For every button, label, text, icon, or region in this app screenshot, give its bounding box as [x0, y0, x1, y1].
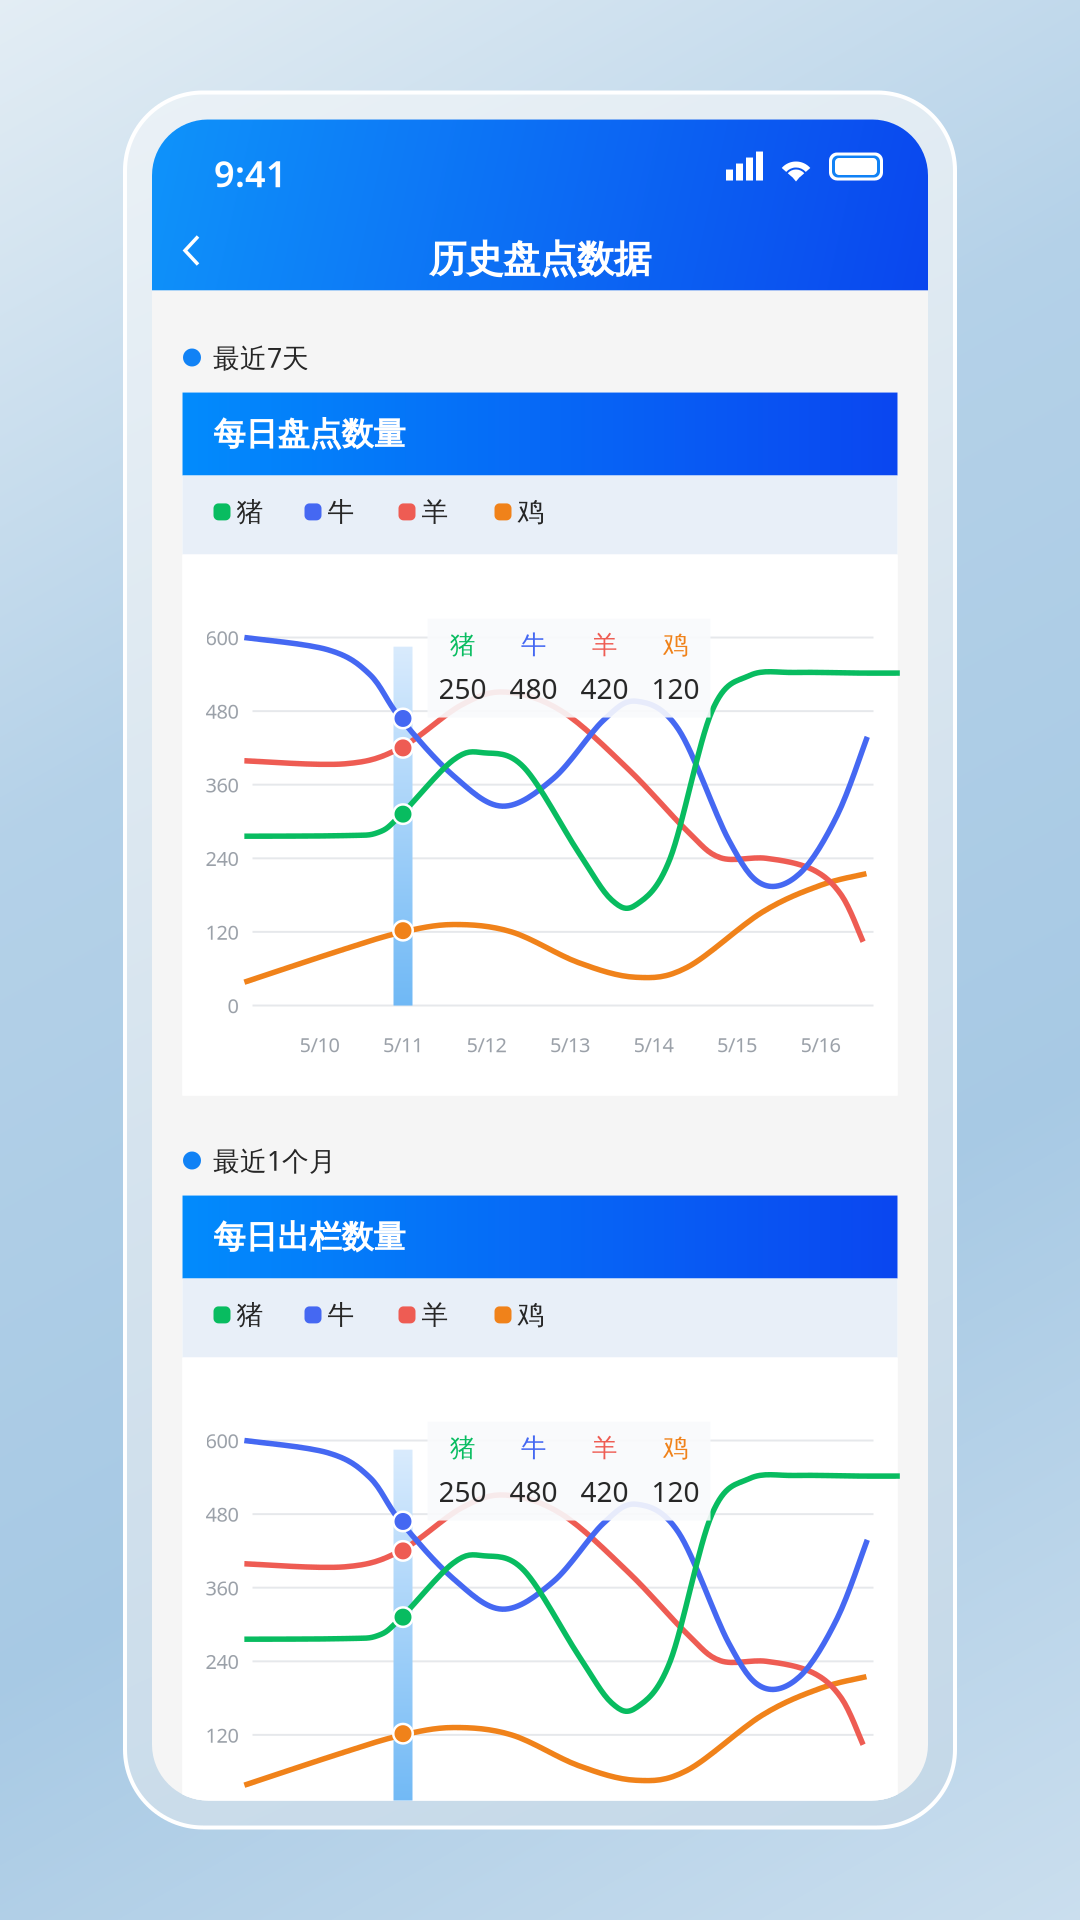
staticText: 羊: [592, 629, 617, 660]
staticText: 鸡: [517, 495, 544, 528]
staticText: 猪: [236, 495, 263, 528]
staticText: 250: [438, 1472, 486, 1510]
staticText: 牛: [521, 1432, 546, 1463]
staticText: 5/13: [550, 1031, 590, 1058]
staticText: 5/16: [800, 1031, 840, 1058]
staticText: 最近1个月: [213, 1143, 336, 1178]
staticText: 最近7天: [213, 340, 309, 375]
staticText: 每日出栏数量: [213, 1217, 405, 1257]
staticText: 360: [205, 1574, 238, 1601]
staticText: 5/15: [717, 1031, 757, 1058]
staticText: 0: [227, 992, 238, 1019]
staticText: 240: [205, 1648, 238, 1675]
staticText: 120: [205, 1722, 238, 1748]
staticText: 牛: [521, 629, 546, 660]
staticText: 牛: [327, 1298, 354, 1331]
staticText: 420: [580, 669, 628, 707]
staticText: 360: [205, 771, 238, 798]
staticText: 480: [509, 669, 557, 707]
staticText: 5/10: [299, 1031, 339, 1058]
staticText: 猪: [450, 629, 475, 660]
staticText: 420: [580, 1472, 628, 1510]
staticText: 羊: [592, 1432, 617, 1463]
staticText: 每日盘点数量: [213, 414, 405, 454]
button[interactable]: Back: [155, 220, 215, 280]
staticText: 250: [438, 669, 486, 707]
staticText: 猪: [450, 1432, 475, 1463]
staticText: 羊: [421, 495, 448, 528]
staticText: 猪: [236, 1298, 263, 1331]
staticText: 240: [205, 845, 238, 872]
staticText: 鸡: [517, 1298, 544, 1331]
staticText: 鸡: [663, 629, 688, 660]
staticText: 9:41: [214, 149, 287, 197]
staticText: 120: [205, 919, 238, 945]
staticText: 480: [509, 1472, 557, 1510]
staticText: 600: [205, 624, 238, 651]
staticText: 5/12: [466, 1031, 506, 1058]
staticText: 5/14: [633, 1031, 673, 1058]
staticText: 羊: [421, 1298, 448, 1331]
staticText: 历史盘点数据: [429, 236, 651, 282]
staticText: 480: [205, 1501, 238, 1527]
staticText: 0: [227, 1795, 238, 1822]
staticText: 480: [205, 698, 238, 724]
staticText: 600: [205, 1427, 238, 1454]
staticText: 牛: [327, 495, 354, 528]
staticText: 5/11: [383, 1031, 423, 1058]
staticText: 鸡: [663, 1432, 688, 1463]
staticText: 120: [651, 669, 699, 707]
staticText: 120: [651, 1472, 699, 1510]
